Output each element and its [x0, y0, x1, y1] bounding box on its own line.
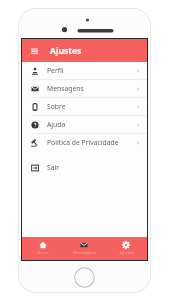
- button[interactable]: Menu: [28, 45, 40, 57]
- staticText: Sobre: [47, 102, 136, 111]
- button[interactable]: Ajustes: [105, 237, 147, 260]
- staticText: Mensagens: [73, 250, 96, 256]
- button[interactable]: Ajuda: [22, 116, 147, 133]
- staticText: Ajuda: [47, 120, 136, 129]
- button[interactable]: Home: [22, 237, 63, 260]
- button[interactable]: Menu: [22, 39, 147, 62]
- button[interactable]: Mensagens: [22, 80, 147, 97]
- staticText: Ajustes: [119, 250, 134, 256]
- staticText: Home: [37, 250, 49, 256]
- staticText: Política de Privacidade: [47, 138, 136, 147]
- staticText: Mensagens: [47, 84, 136, 93]
- button[interactable]: Política de Privacidade: [22, 134, 147, 151]
- button[interactable]: Sobre: [22, 98, 147, 115]
- button[interactable]: Sair: [22, 159, 147, 176]
- staticText: Perfil: [47, 66, 136, 75]
- staticText: Ajustes: [50, 45, 82, 57]
- button[interactable]: Perfil: [22, 62, 147, 79]
- staticText: Sair: [47, 163, 140, 172]
- button[interactable]: Mensagens: [63, 237, 105, 260]
